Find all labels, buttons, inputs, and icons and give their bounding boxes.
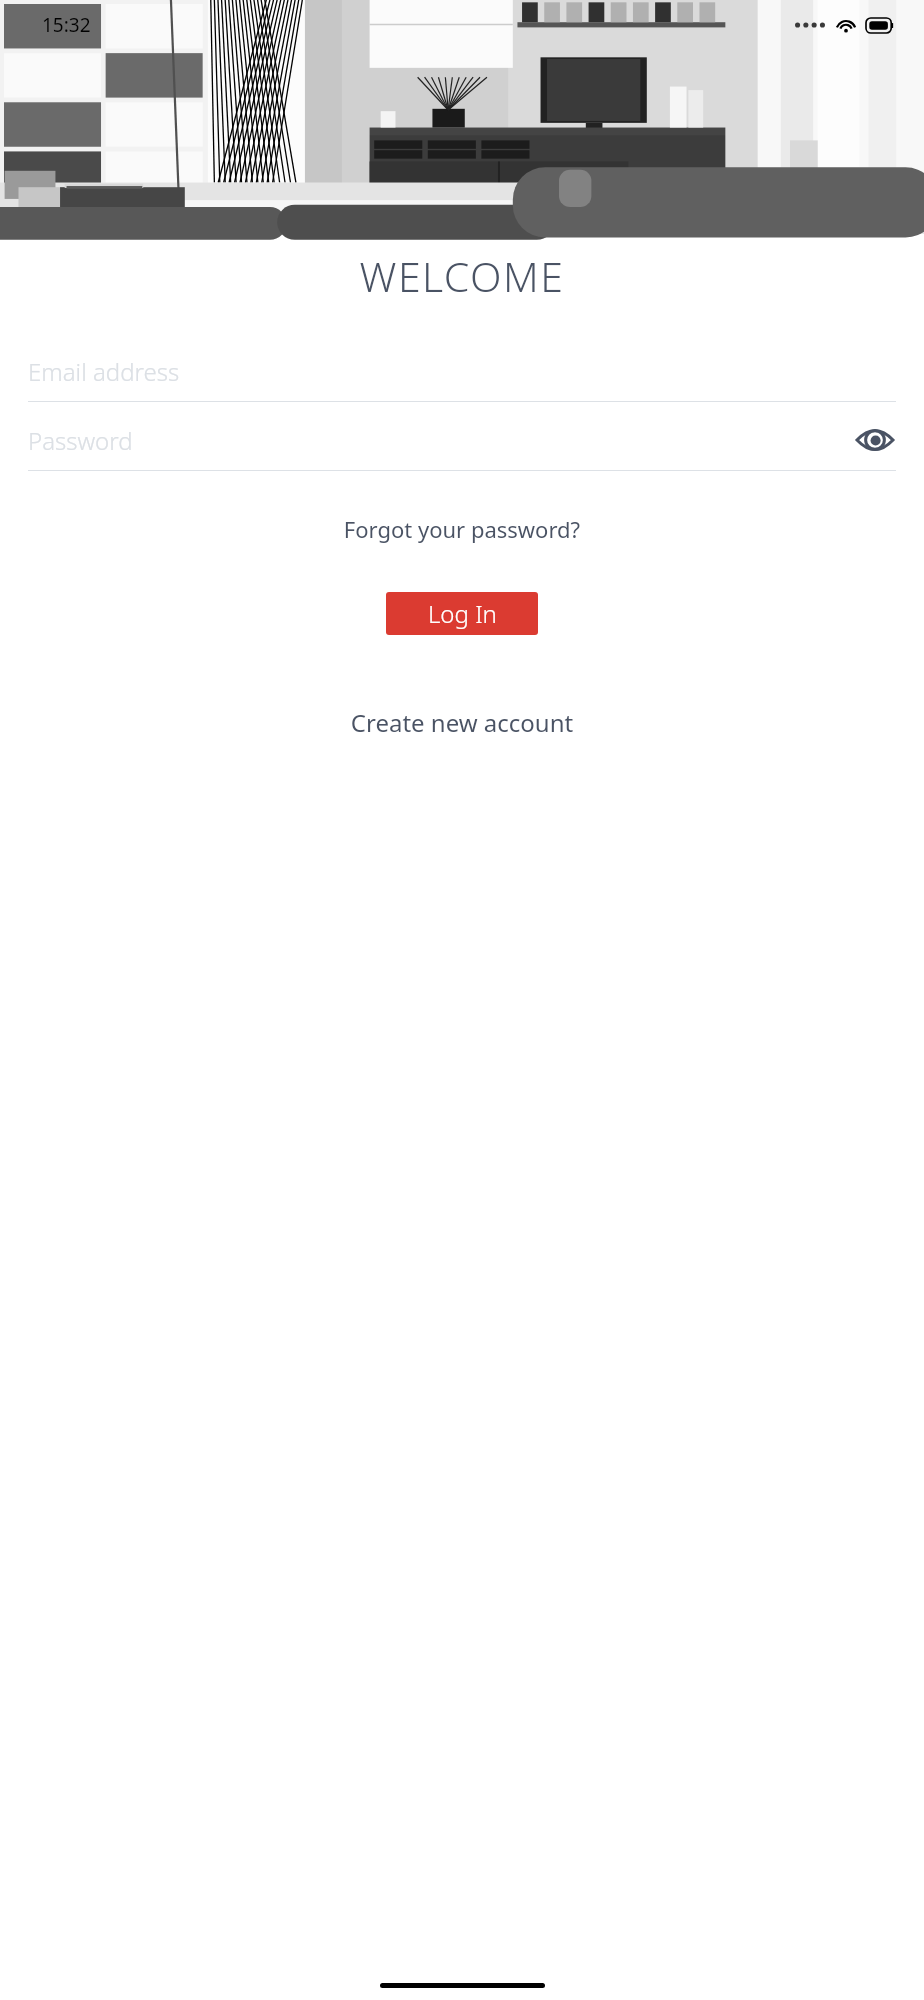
button[interactable]: Show password (854, 419, 896, 461)
staticText: WELCOME (0, 248, 924, 304)
button[interactable]: Password (28, 424, 896, 471)
staticText: Email address (28, 355, 180, 388)
button[interactable]: Email address (28, 355, 896, 402)
staticText: 15:32 (42, 12, 91, 38)
button[interactable]: Create new account (0, 706, 924, 739)
button[interactable]: Forgot your password? (0, 514, 924, 544)
button[interactable]: Log In (386, 592, 538, 635)
staticText: Log In (428, 597, 497, 630)
staticText: Password (28, 424, 133, 457)
